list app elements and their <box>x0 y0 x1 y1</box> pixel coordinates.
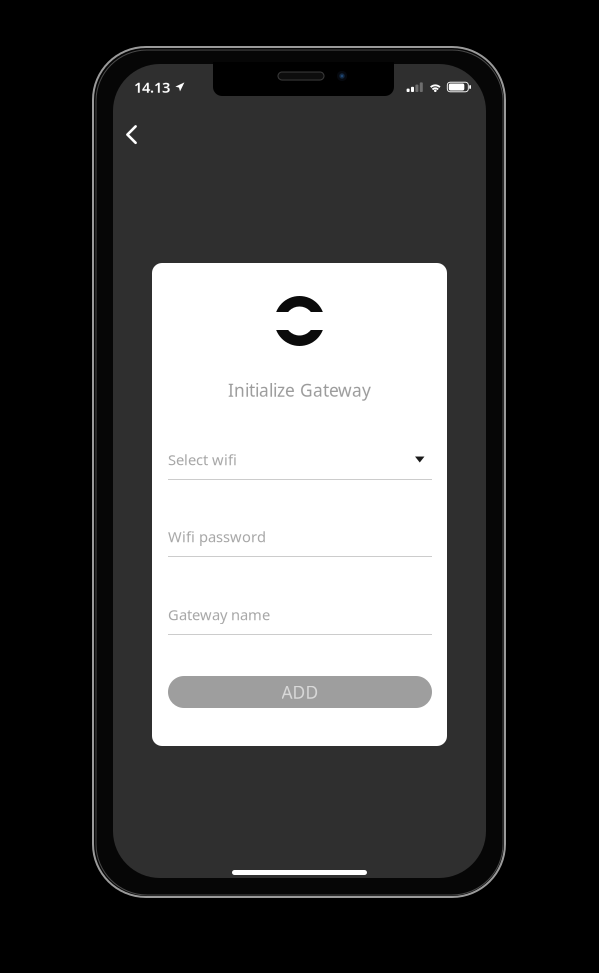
staticText: ADD <box>281 680 318 703</box>
staticText: Select wifi <box>168 450 237 469</box>
staticText: Wifi password <box>168 527 266 546</box>
button[interactable]: Gateway name <box>168 606 432 635</box>
button[interactable]: Wifi password <box>168 528 432 557</box>
staticText: 14.13 <box>134 77 170 97</box>
staticText: Initialize Gateway <box>228 378 371 401</box>
staticText: Gateway name <box>168 605 270 624</box>
button[interactable]: Back <box>117 116 146 153</box>
button[interactable]: ADD <box>168 676 432 708</box>
button[interactable]: Select wifi <box>168 451 432 480</box>
